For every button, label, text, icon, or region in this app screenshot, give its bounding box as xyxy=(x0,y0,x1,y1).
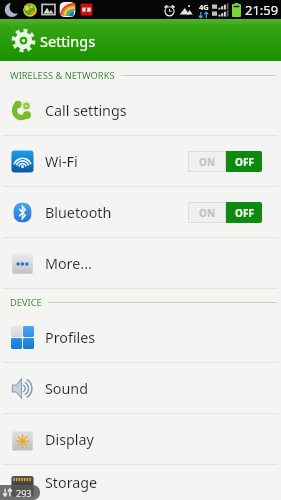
staticText: Storage xyxy=(45,473,98,492)
staticText: 293 xyxy=(16,487,32,499)
button[interactable]: Sound xyxy=(0,363,281,413)
staticText: 21:59 xyxy=(245,1,279,19)
staticText: OFF xyxy=(235,155,254,169)
staticText: WIRELESS & NETWORKS xyxy=(10,69,115,82)
button[interactable]: ON xyxy=(188,202,262,223)
button[interactable]: More... xyxy=(0,238,281,288)
other: Settings xyxy=(11,28,36,53)
staticText: ON xyxy=(199,155,216,169)
staticText: 4G xyxy=(199,2,209,12)
staticText: Bluetooth xyxy=(45,203,112,222)
staticText: Display xyxy=(45,430,94,449)
button[interactable]: Display xyxy=(0,414,281,464)
staticText: Profiles xyxy=(45,328,96,347)
staticText: Call settings xyxy=(45,101,127,120)
staticText: ON xyxy=(199,206,216,220)
staticText: Sound xyxy=(45,379,88,398)
staticText: More... xyxy=(45,254,92,273)
staticText: Wi-Fi xyxy=(45,152,78,171)
button[interactable]: Storage xyxy=(0,465,281,500)
button[interactable]: Call settings xyxy=(0,85,281,135)
staticText: DEVICE xyxy=(10,296,42,309)
button[interactable]: Wi-Fi xyxy=(0,136,281,186)
staticText: Settings xyxy=(40,31,96,51)
staticText: OFF xyxy=(235,206,254,220)
button[interactable]: ON xyxy=(188,151,262,172)
button[interactable]: Profiles xyxy=(0,312,281,362)
button[interactable]: Bluetooth xyxy=(0,187,281,237)
